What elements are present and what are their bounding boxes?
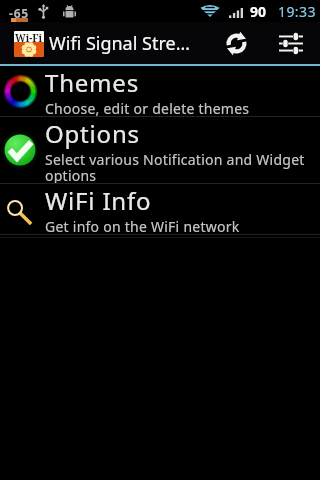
- staticText: Wifi Signal Stre…: [49, 31, 190, 56]
- staticText: Get info on the WiFi network: [45, 217, 240, 234]
- staticText: Themes: [45, 66, 139, 99]
- staticText: Options: [45, 117, 140, 150]
- staticText: Select various Notification and Widget o…: [45, 150, 320, 183]
- button[interactable]: Themes: [0, 66, 320, 116]
- staticText: WiFi Info: [45, 184, 152, 217]
- staticText: Wi-Fi: [15, 31, 43, 42]
- button[interactable]: WiFi Info: [0, 184, 320, 234]
- staticText: 19:33: [278, 2, 316, 21]
- button[interactable]: Settings: [271, 22, 311, 64]
- staticText: 90: [250, 2, 267, 21]
- button[interactable]: Wi-Fi: [0, 22, 210, 64]
- staticText: Choose, edit or delete themes: [45, 99, 250, 116]
- button[interactable]: Options: [0, 117, 320, 183]
- button[interactable]: Refresh: [216, 22, 256, 64]
- staticText: -65: [9, 5, 29, 21]
